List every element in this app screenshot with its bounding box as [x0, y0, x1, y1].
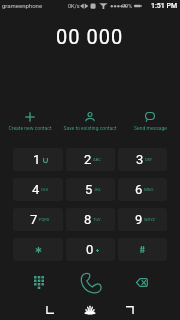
button[interactable]: Send message — [120, 108, 180, 134]
button[interactable]: Home — [70, 300, 110, 320]
button[interactable]: Back — [30, 300, 70, 320]
button[interactable]: Call — [65, 266, 116, 299]
button[interactable]: 6 — [118, 178, 167, 201]
button[interactable]: 9 — [118, 208, 167, 231]
button[interactable]: Create new contact — [0, 108, 60, 134]
staticText: 00 000 — [56, 25, 124, 45]
button[interactable]: 2 — [66, 148, 115, 171]
staticText: TUV — [93, 217, 101, 222]
button[interactable]: 3 — [118, 148, 167, 171]
button[interactable]: Save to existing contact — [60, 108, 120, 134]
staticText: PQRS — [39, 217, 50, 222]
button[interactable]: 5 — [66, 178, 115, 201]
button[interactable] — [13, 238, 63, 261]
button[interactable]: Backspace — [116, 266, 167, 299]
button[interactable]: Dialpad — [13, 266, 65, 299]
staticText: GHI — [41, 187, 48, 192]
staticText: WXYZ — [144, 217, 155, 222]
staticText: 8 — [84, 212, 92, 227]
button[interactable]: 8 — [66, 208, 115, 231]
staticText: 0 — [86, 242, 94, 257]
staticText: 1 — [33, 152, 41, 167]
staticText: 0K/s — [68, 3, 80, 9]
staticText: Save to existing contact — [63, 125, 117, 131]
staticText: JKL — [94, 187, 101, 192]
staticText: 7 — [30, 212, 38, 227]
staticText: 9 — [135, 212, 143, 227]
staticText: ABC — [93, 157, 101, 162]
staticText: 5 — [85, 182, 93, 197]
staticText: 4 — [32, 182, 40, 197]
button[interactable]: 7 — [13, 208, 63, 231]
button[interactable]: Recent apps — [110, 300, 150, 320]
button[interactable]: 4 — [13, 178, 63, 201]
staticText: MNO — [144, 187, 154, 192]
staticText: Create new contact — [8, 125, 52, 131]
button[interactable] — [118, 238, 167, 261]
staticText: DEF — [145, 157, 153, 162]
button[interactable]: 0 — [66, 238, 115, 261]
staticText: 3 — [136, 152, 144, 167]
staticText: 2 — [84, 152, 92, 167]
staticText: 1:51 PM — [151, 2, 178, 10]
staticText: grameenphone — [2, 2, 43, 9]
staticText: 79% — [122, 3, 133, 9]
staticText: Send message — [134, 125, 167, 131]
button[interactable]: 1 — [13, 148, 63, 171]
staticText: 6 — [135, 182, 143, 197]
